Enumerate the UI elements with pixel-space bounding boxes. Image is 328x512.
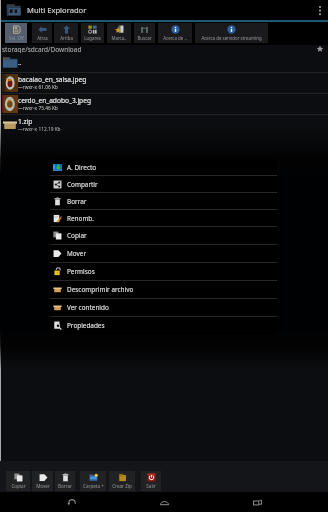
- staticText: Carpeta +: [83, 483, 104, 489]
- button[interactable]: Lugares: [81, 23, 104, 43]
- button[interactable]: Borrar: [55, 471, 75, 491]
- staticText: Sel. Off: [9, 35, 24, 41]
- staticText: Borrar: [67, 197, 87, 206]
- button[interactable]: More options: [312, 0, 328, 20]
- staticText: Atras: [37, 35, 48, 41]
- button[interactable]: Sel. Off: [5, 23, 27, 43]
- staticText: Crear Zip: [112, 483, 132, 489]
- button[interactable]: Permisos: [50, 263, 277, 280]
- button[interactable]: Ver contenido: [50, 299, 277, 316]
- staticText: A. Directo: [67, 163, 97, 172]
- staticText: Multi Explorador: [27, 5, 87, 15]
- button[interactable]: Crear Zip: [109, 471, 135, 491]
- button[interactable]: Carpeta +: [80, 471, 106, 491]
- button[interactable]: Renomb.: [50, 210, 277, 226]
- button[interactable]: Atras: [32, 23, 52, 43]
- button[interactable]: Mover: [50, 245, 277, 262]
- staticText: Compartir: [67, 180, 98, 189]
- staticText: bacalao_en_salsa.jpeg: [18, 75, 87, 84]
- staticText: storage/sdcard/Download: [2, 45, 82, 53]
- button[interactable]: Home: [142, 492, 186, 512]
- staticText: Renomb.: [67, 214, 95, 223]
- button[interactable]: Propiedades: [50, 317, 277, 334]
- button[interactable]: Descomprimir archivo: [50, 281, 277, 298]
- staticText: —rwxr-x 112.19 Kb: [18, 126, 61, 133]
- button[interactable]: 1.zip: [0, 115, 328, 135]
- staticText: Borrar: [58, 483, 72, 489]
- button[interactable]: cerdo_en_adobo_3.jpeg: [0, 94, 328, 114]
- staticText: Buscar: [137, 35, 152, 41]
- button[interactable]: Acerca de servidor streaming: [195, 23, 268, 43]
- button[interactable]: Salir: [141, 471, 161, 491]
- staticText: Permisos: [67, 267, 95, 276]
- button[interactable]: Acerca de ..: [158, 23, 192, 43]
- button[interactable]: bacalao_en_salsa.jpeg: [0, 73, 328, 93]
- staticText: Copiar: [11, 483, 26, 489]
- button[interactable]: A. Directo: [50, 159, 277, 175]
- staticText: Ver contenido: [67, 303, 109, 312]
- staticText: Arriba: [60, 35, 73, 41]
- staticText: Propiedades: [67, 321, 105, 330]
- button[interactable]: Compartir: [50, 176, 277, 192]
- staticText: Descomprimir archivo: [67, 285, 134, 294]
- button[interactable]: Marca..: [107, 23, 131, 43]
- button[interactable]: ..: [0, 53, 328, 72]
- button[interactable]: Recents: [235, 492, 279, 512]
- staticText: —rwxr-x 61.06 Kb: [18, 84, 58, 91]
- staticText: Marca..: [111, 35, 127, 41]
- staticText: Lugares: [84, 35, 101, 41]
- staticText: Copiar: [67, 231, 87, 240]
- staticText: Acerca de servidor streaming: [201, 35, 262, 41]
- staticText: 1.zip: [18, 117, 33, 126]
- staticText: Mover: [36, 483, 50, 489]
- button[interactable]: Mover: [32, 471, 53, 491]
- button[interactable]: Arriba: [54, 23, 78, 43]
- button[interactable]: Copiar: [50, 227, 277, 244]
- staticText: Acerca de ..: [163, 35, 187, 41]
- button[interactable]: Borrar: [50, 193, 277, 209]
- staticText: Salir: [146, 483, 156, 489]
- staticText: cerdo_en_adobo_3.jpeg: [18, 96, 91, 105]
- button[interactable]: Buscar: [134, 23, 155, 43]
- staticText: Mover: [67, 249, 87, 258]
- button[interactable]: Copiar: [6, 471, 30, 491]
- button[interactable]: Back: [49, 492, 93, 512]
- button[interactable]: Bookmark: [315, 45, 325, 53]
- staticText: —rwxr-x 75.46 Kb: [18, 105, 58, 112]
- staticText: ..: [18, 58, 22, 67]
